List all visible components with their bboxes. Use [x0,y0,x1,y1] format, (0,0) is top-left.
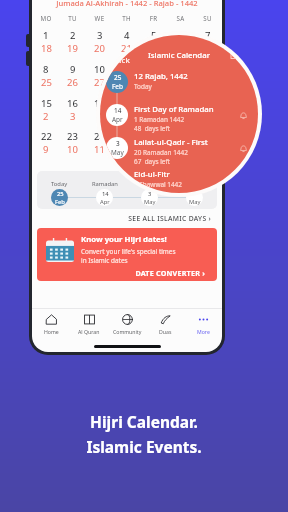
staticText: Today [51,180,68,188]
staticText: 48 days left [134,124,170,133]
button[interactable]: 26 [140,130,167,156]
staticText: Hijri Calendar. [0,411,288,432]
staticText: 23 [67,130,78,143]
button[interactable]: 5 [140,29,167,55]
button[interactable]: 21 [194,97,221,123]
staticText: 3 [70,110,76,123]
staticText: 7 [205,29,211,42]
button[interactable]: 14 [100,104,258,134]
staticText: 11 [121,63,132,76]
staticText: 1 [43,29,49,42]
staticText: 11 [94,143,105,156]
staticText: 20 Ramadan 1442 [134,148,188,157]
staticText: 29 [148,76,159,89]
button[interactable]: SEE ALL ISLAMIC DAYS › [32,214,211,223]
staticText: More [197,328,210,335]
staticText: 15 [41,97,52,110]
staticText: TH [113,14,140,22]
staticText: May [111,148,124,157]
staticText: 3 [116,139,120,148]
staticText: 24 [94,130,105,143]
staticText: 8 [205,110,211,123]
button[interactable]: Know your Hijri dates! [37,228,217,281]
button[interactable]: 16 [59,97,86,123]
button[interactable]: Today [37,171,82,206]
button[interactable]: 27 [167,130,194,156]
staticText: La.. [145,180,155,188]
staticText: 7 [178,110,184,123]
staticText: TU [59,14,86,22]
button[interactable]: 10 [86,63,113,89]
button[interactable]: Community [108,313,146,335]
staticText: in Islamic dates [81,256,128,265]
staticText: 6 [151,110,157,123]
staticText: 13 [175,63,186,76]
button[interactable]: 23 [59,130,86,156]
staticText: 2 [43,110,49,123]
button[interactable]: 19 [140,97,167,123]
button[interactable]: 20 [167,97,194,123]
staticText: 19 [148,97,159,110]
button[interactable]: 1 [33,29,59,55]
button[interactable]: May [172,171,217,206]
staticText: May [189,198,201,206]
button[interactable]: 2 [59,29,86,55]
staticText: Lailat-ul-Qadr - First [134,137,208,148]
button[interactable]: 13 [167,63,194,89]
button[interactable]: Al Quran [70,313,108,335]
button[interactable]: 9 [59,63,86,89]
button[interactable]: More [184,313,222,335]
button[interactable]: 8 [33,63,59,89]
staticText: 15 [202,143,213,156]
button[interactable]: 3 [100,137,258,167]
staticText: Feb [112,82,123,91]
staticText: 5 [124,110,130,123]
staticText: 21 [202,97,213,110]
staticText: 27 [175,130,186,143]
staticText: 20 [94,42,105,55]
staticText: 25 [57,190,64,198]
button[interactable]: 25 [113,130,140,156]
button[interactable]: 17 [86,97,113,123]
other: Reminder [239,144,248,153]
staticText: 1 Ramadan 1442 [134,115,185,124]
staticText: 28 [202,130,213,143]
button[interactable]: 18 [113,97,140,123]
staticText: 24 [202,42,213,55]
button[interactable]: 15 [33,97,59,123]
staticText: 25 [121,130,132,143]
button[interactable]: 25 [100,71,258,101]
staticText: 12 [148,63,159,76]
button[interactable]: Duas [146,313,184,335]
button[interactable]: 7 [194,29,221,55]
staticText: FR [140,14,167,22]
staticText: 25 [41,76,52,89]
button[interactable]: 22 [33,130,59,156]
button[interactable]: 6 [167,29,194,55]
staticText: Al Quran [78,328,100,335]
button[interactable]: Ramadan [82,171,127,206]
button[interactable]: 11 [113,63,140,89]
staticText: 67 days left [134,157,170,166]
button[interactable]: 28 [194,130,221,156]
staticText: 12 Rajab, 1442 [134,71,188,82]
button[interactable]: 24 [86,130,113,156]
button[interactable]: 12 [140,63,167,89]
button[interactable]: 3 [86,29,113,55]
button[interactable]: 4 [113,29,140,55]
staticText: 13 [148,143,159,156]
button[interactable]: La.. [127,171,172,206]
button[interactable]: Home [32,313,70,335]
staticText: SU [194,14,221,22]
staticText: 27 [94,76,105,89]
staticText: SA [167,14,194,22]
staticText: Back [112,55,130,66]
staticText: DATE CONVERTER › [37,268,205,278]
other: Reminder [239,111,248,120]
staticText: 14 [175,143,186,156]
staticText: 28 [121,76,132,89]
button[interactable]: Add event [230,50,240,60]
staticText: 14 [114,106,122,115]
